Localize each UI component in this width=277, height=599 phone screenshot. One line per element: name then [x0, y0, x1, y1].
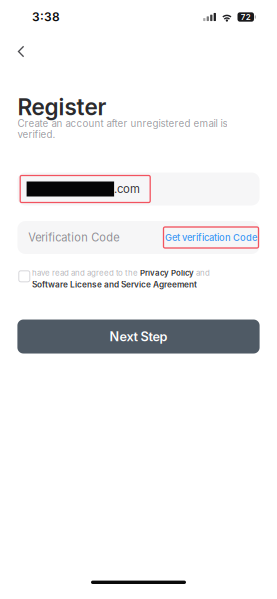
staticText: Software License and Service Agreement	[32, 279, 197, 289]
staticText: Create an account after unregistered ema…	[17, 118, 227, 129]
staticText: have read and agreed to the	[32, 268, 140, 278]
staticText: Register	[17, 93, 106, 121]
button[interactable]: Agree to terms	[17, 268, 30, 282]
button[interactable]: Back	[0, 45, 54, 58]
button[interactable]: Next Step	[17, 319, 260, 353]
staticText: Next Step	[109, 329, 167, 344]
staticText: Get verification Code	[165, 232, 257, 243]
staticText: Privacy Policy	[140, 268, 194, 278]
staticText: .com	[114, 182, 140, 196]
staticText: and	[194, 268, 210, 278]
button[interactable]: Get verification Code	[163, 227, 258, 248]
staticText: 3:38	[32, 10, 60, 24]
staticText: verified.	[17, 129, 55, 140]
staticText: 72	[241, 12, 251, 22]
staticText: Verification Code	[28, 231, 119, 244]
